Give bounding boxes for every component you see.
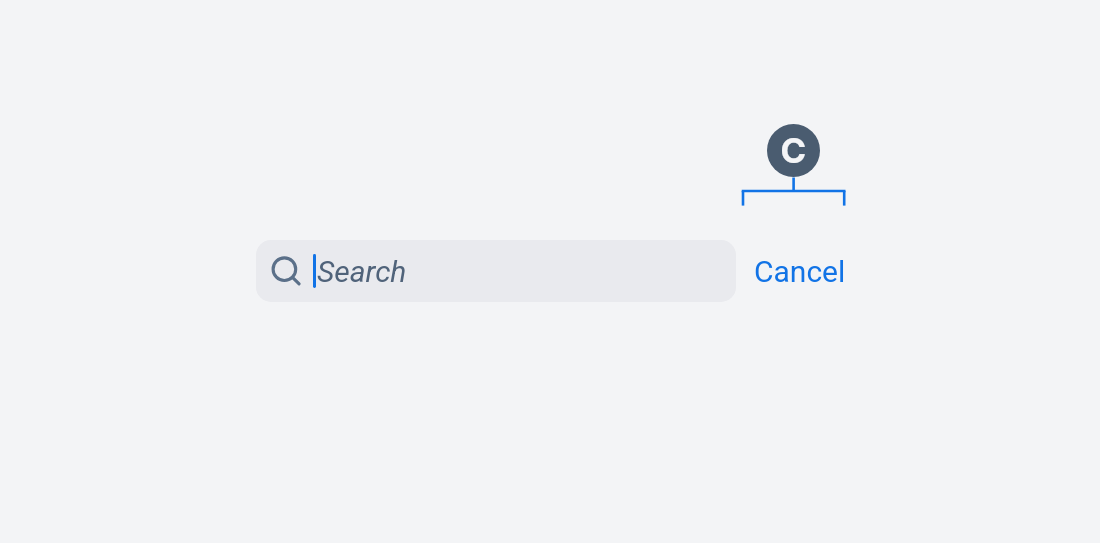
staticText: Cancel	[754, 254, 846, 289]
button[interactable]: Cancel	[748, 244, 852, 299]
other: Search	[271, 255, 304, 287]
staticText: Search	[317, 254, 407, 289]
button[interactable]: Search	[256, 240, 736, 302]
button[interactable]: Callout C	[767, 124, 820, 177]
staticText: C	[781, 130, 806, 171]
